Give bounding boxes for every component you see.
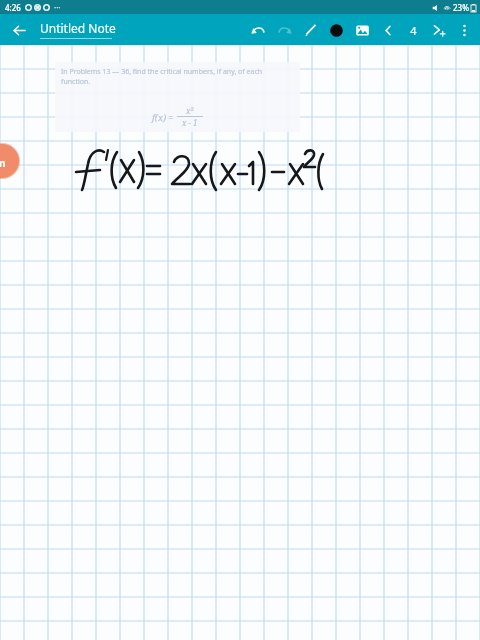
staticText: 4:26: [5, 2, 21, 13]
staticText: 23%: [453, 2, 469, 13]
button[interactable]: Back: [6, 17, 32, 43]
button[interactable]: 4: [401, 18, 425, 42]
button[interactable]: Colour: [323, 17, 349, 43]
staticText: ···: [54, 2, 61, 13]
staticText: x − 1: [182, 117, 198, 128]
button[interactable]: Undo: [245, 17, 271, 43]
staticText: f(x) =: [152, 111, 174, 123]
staticText: x²: [186, 105, 194, 116]
button[interactable]: More options: [451, 17, 477, 43]
button[interactable]: Untitled Note: [36, 18, 120, 41]
button[interactable]: App badge: [0, 152, 10, 172]
staticText: In Problems 13 — 36, find the critical n…: [61, 67, 263, 77]
button[interactable]: Add page: [425, 17, 451, 43]
staticText: function.: [61, 77, 91, 87]
button[interactable]: Pen tool: [297, 17, 323, 43]
button[interactable]: Previous page: [375, 17, 401, 43]
staticText: m: [0, 155, 6, 170]
button[interactable]: Insert image: [349, 17, 375, 43]
staticText: Untitled Note: [40, 20, 116, 36]
staticText: 4: [410, 23, 417, 38]
button[interactable]: Redo: [271, 17, 297, 43]
